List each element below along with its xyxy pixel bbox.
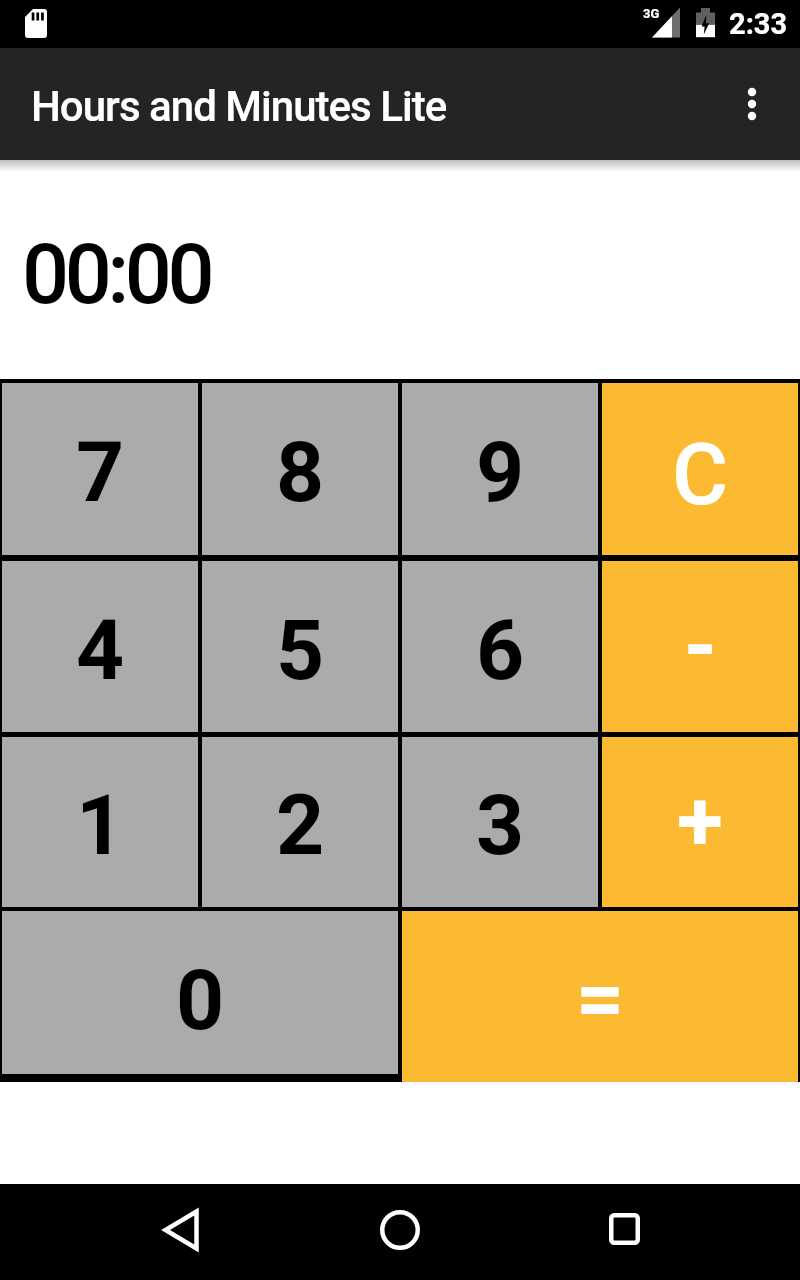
button[interactable]: 6 bbox=[402, 561, 598, 732]
staticText: 1 bbox=[76, 776, 125, 874]
staticText: 4 bbox=[76, 601, 125, 699]
staticText: 00:00 bbox=[22, 226, 211, 323]
staticText: = bbox=[576, 949, 625, 1047]
button[interactable]: 8 bbox=[202, 383, 398, 555]
staticText: 8 bbox=[276, 423, 325, 521]
staticText: 9 bbox=[476, 423, 525, 521]
staticText: C bbox=[672, 424, 729, 525]
button[interactable]: - bbox=[602, 561, 798, 732]
button[interactable]: 9 bbox=[402, 383, 598, 555]
button[interactable] bbox=[133, 1184, 229, 1280]
button[interactable]: + bbox=[602, 737, 798, 907]
staticText: 2 bbox=[276, 776, 325, 874]
button[interactable]: 0 bbox=[2, 911, 398, 1074]
button[interactable]: = bbox=[402, 911, 798, 1082]
staticText: + bbox=[677, 772, 723, 870]
staticText: Hours and Minutes Lite bbox=[31, 82, 447, 131]
button[interactable] bbox=[352, 1184, 448, 1280]
button[interactable] bbox=[704, 48, 800, 160]
staticText: 3G bbox=[643, 6, 660, 21]
staticText: 5 bbox=[276, 601, 325, 699]
staticText: 6 bbox=[476, 601, 525, 699]
staticText: 7 bbox=[76, 423, 125, 521]
staticText: 2:33 bbox=[729, 7, 788, 41]
button[interactable] bbox=[576, 1184, 672, 1280]
button[interactable]: 7 bbox=[2, 383, 198, 555]
button[interactable]: C bbox=[602, 383, 798, 555]
button[interactable]: 4 bbox=[2, 561, 198, 732]
staticText: 3 bbox=[476, 776, 525, 874]
button[interactable]: 3 bbox=[402, 737, 598, 907]
button[interactable]: 5 bbox=[202, 561, 398, 732]
staticText: 0 bbox=[176, 951, 225, 1049]
button[interactable]: 1 bbox=[2, 737, 198, 907]
staticText: - bbox=[684, 597, 717, 695]
button[interactable]: 2 bbox=[202, 737, 398, 907]
